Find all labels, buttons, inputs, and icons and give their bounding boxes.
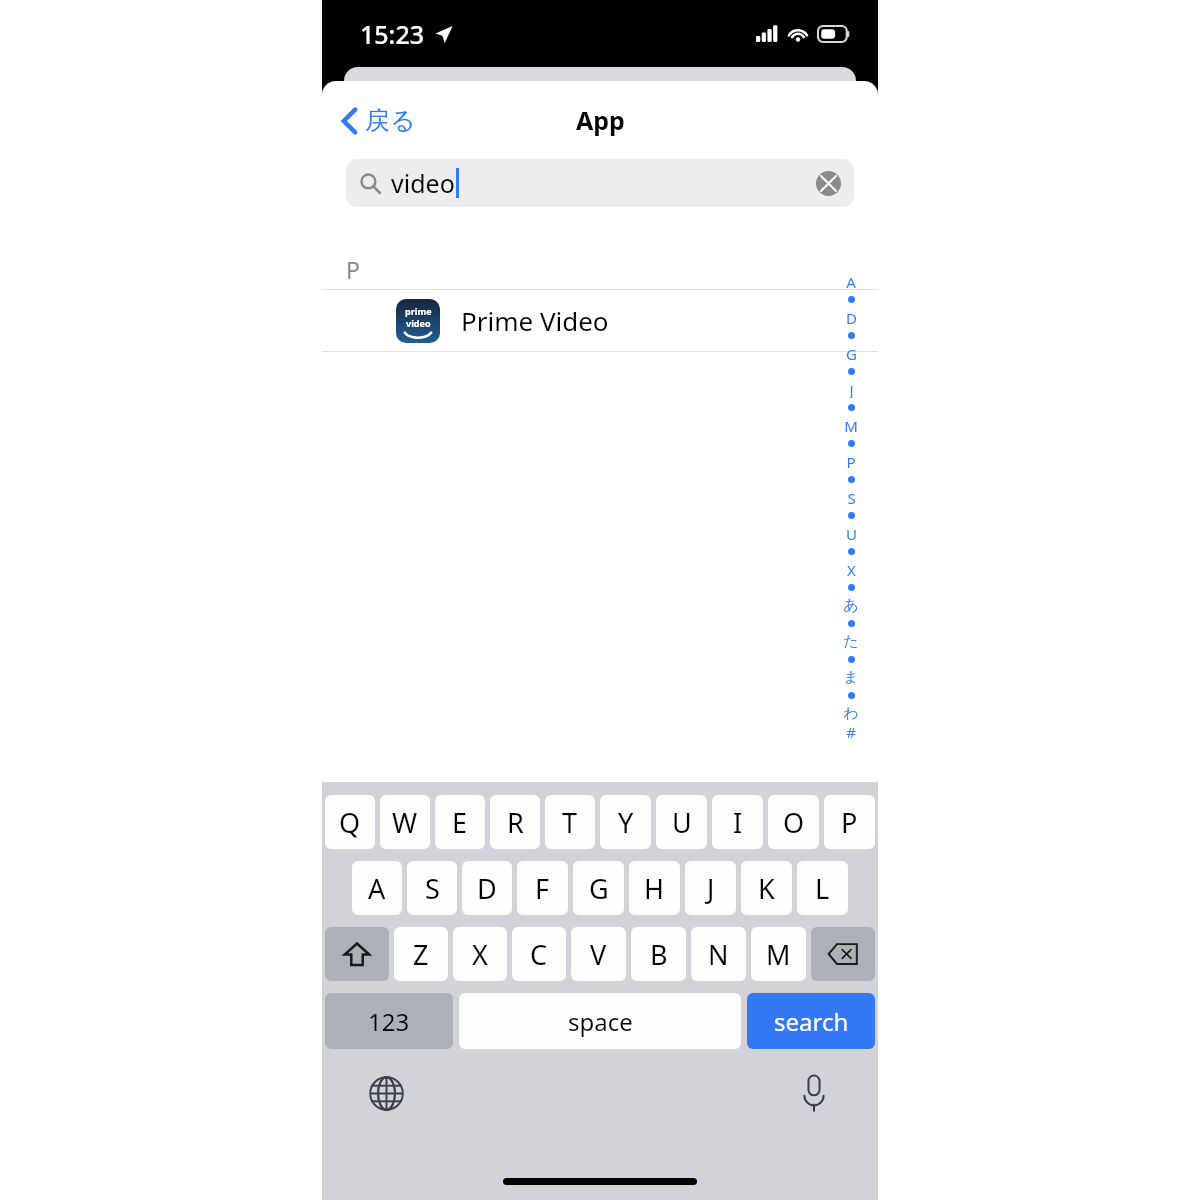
staticText: I [733, 804, 743, 841]
staticText: J [707, 870, 715, 907]
staticText: た [843, 632, 859, 650]
button[interactable]: C [512, 927, 566, 981]
staticText: W [392, 804, 418, 841]
button[interactable]: Delete [811, 927, 875, 981]
button[interactable]: Change keyboard [362, 1069, 410, 1117]
staticText: M [766, 936, 791, 973]
button[interactable]: N [691, 927, 746, 981]
button[interactable]: Shift [325, 927, 389, 981]
button[interactable]: prime [322, 290, 878, 351]
button[interactable]: M [751, 927, 806, 981]
staticText: G [589, 870, 609, 907]
staticText: P [846, 452, 856, 470]
button[interactable]: U [656, 795, 707, 849]
staticText: K [758, 870, 775, 907]
staticText: S [425, 870, 440, 907]
staticText: X [847, 560, 856, 578]
staticText: 123 [368, 1005, 410, 1038]
staticText: Q [339, 804, 361, 841]
staticText: D [846, 308, 857, 326]
button[interactable]: T [545, 795, 595, 849]
button[interactable]: Clear text [814, 169, 842, 197]
staticText: C [530, 936, 548, 973]
staticText: E [452, 804, 468, 841]
staticText: P [841, 804, 858, 841]
staticText: Z [413, 936, 429, 973]
button[interactable]: V [571, 927, 626, 981]
staticText: S [847, 488, 856, 506]
staticText: O [783, 804, 805, 841]
staticText: prime [405, 305, 432, 317]
staticText: F [535, 870, 550, 907]
staticText: 15:23 [360, 17, 425, 51]
staticText: J [849, 380, 854, 398]
staticText: space [568, 1005, 633, 1038]
staticText: L [815, 870, 830, 907]
button[interactable]: Q [325, 795, 375, 849]
button[interactable]: E [435, 795, 485, 849]
button[interactable]: L [797, 861, 848, 915]
staticText: V [590, 936, 607, 973]
button[interactable]: Section index [838, 272, 864, 740]
button[interactable]: A [352, 861, 402, 915]
button[interactable]: O [768, 795, 819, 849]
button[interactable]: K [741, 861, 792, 915]
button[interactable]: video [346, 159, 854, 207]
button[interactable]: Y [600, 795, 651, 849]
button[interactable]: S [407, 861, 457, 915]
staticText: N [708, 936, 729, 973]
button[interactable]: W [380, 795, 430, 849]
staticText: X [472, 936, 488, 973]
button[interactable]: B [631, 927, 686, 981]
staticText: 戻る [365, 105, 416, 136]
button[interactable]: Z [394, 927, 448, 981]
staticText: Prime Video [461, 303, 609, 338]
staticText: M [844, 416, 858, 434]
staticText: App [576, 103, 625, 137]
button[interactable]: D [462, 861, 512, 915]
button[interactable]: G [573, 861, 624, 915]
staticText: わ [843, 704, 859, 722]
button[interactable]: Dictation [790, 1069, 838, 1117]
staticText: A [368, 870, 386, 907]
button[interactable]: R [490, 795, 540, 849]
staticText: B [650, 936, 668, 973]
staticText: ま [843, 668, 859, 686]
staticText: video [391, 166, 455, 200]
staticText: T [562, 804, 578, 841]
button[interactable]: X [453, 927, 507, 981]
staticText: D [477, 870, 497, 907]
staticText: R [507, 804, 524, 841]
staticText: search [774, 1005, 849, 1038]
button[interactable]: J [685, 861, 736, 915]
staticText: U [846, 524, 857, 542]
staticText: # [846, 722, 856, 740]
staticText: P [346, 254, 360, 285]
staticText: あ [843, 596, 859, 614]
staticText: U [672, 804, 692, 841]
staticText: Y [618, 804, 634, 841]
staticText: H [644, 870, 665, 907]
staticText: A [846, 272, 856, 290]
staticText: video [406, 317, 431, 329]
button[interactable]: P [824, 795, 875, 849]
button[interactable]: space [459, 993, 741, 1049]
button[interactable]: H [629, 861, 680, 915]
button[interactable]: search [747, 993, 875, 1049]
button[interactable]: I [712, 795, 763, 849]
button[interactable]: 戻る [336, 99, 422, 142]
staticText: G [846, 344, 857, 362]
button[interactable]: F [517, 861, 568, 915]
button[interactable]: 123 [325, 993, 453, 1049]
